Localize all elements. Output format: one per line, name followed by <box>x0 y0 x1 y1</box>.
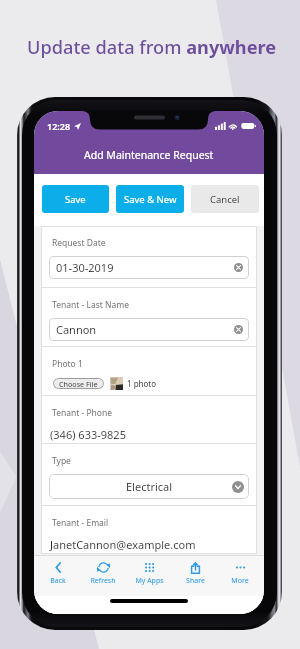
button[interactable]: Save & New <box>116 185 184 213</box>
button[interactable]: My Apps <box>127 556 171 586</box>
staticText: Update data from anywhere <box>27 35 277 60</box>
button[interactable]: Refresh <box>81 556 125 586</box>
staticText: My Apps <box>135 576 164 586</box>
staticText: Save <box>65 193 86 206</box>
staticText: Tenant - Phone <box>52 407 113 419</box>
staticText: Request Date <box>52 237 106 249</box>
staticText: Electrical <box>126 479 173 494</box>
staticText: Save & New <box>124 193 177 206</box>
staticText: More <box>231 576 249 586</box>
staticText: Back <box>50 576 66 586</box>
staticText: Type <box>52 455 71 467</box>
button[interactable]: Cancel <box>191 185 259 213</box>
staticText: 12:28 <box>47 120 71 132</box>
button[interactable]: Choose File <box>53 378 104 389</box>
staticText: Choose File <box>59 379 98 389</box>
button[interactable]: Save <box>42 185 109 213</box>
other: Clear text <box>234 325 243 334</box>
staticText: 01-30-2019 <box>56 260 114 275</box>
staticText: Add Maintenance Request <box>84 148 214 162</box>
staticText: (346) 633-9825 <box>50 427 126 442</box>
staticText: Share <box>186 576 205 586</box>
button[interactable]: Electrical <box>49 474 249 499</box>
button[interactable]: 01-30-2019 <box>49 256 249 279</box>
other: Clear text <box>234 263 243 272</box>
button[interactable]: Share <box>173 556 217 586</box>
button[interactable]: Cannon <box>49 318 249 341</box>
staticText: JanetCannon@example.com <box>50 537 196 552</box>
staticText: Cancel <box>210 193 240 206</box>
staticText: 1 photo <box>127 378 157 389</box>
button[interactable]: Back <box>36 556 80 586</box>
other: Open picker <box>232 481 244 493</box>
staticText: Tenant - Email <box>52 517 109 529</box>
staticText: Tenant - Last Name <box>52 299 129 311</box>
staticText: Photo 1 <box>52 358 83 370</box>
staticText: Cannon <box>56 322 97 337</box>
staticText: Refresh <box>90 576 116 586</box>
button[interactable]: More <box>218 556 262 586</box>
